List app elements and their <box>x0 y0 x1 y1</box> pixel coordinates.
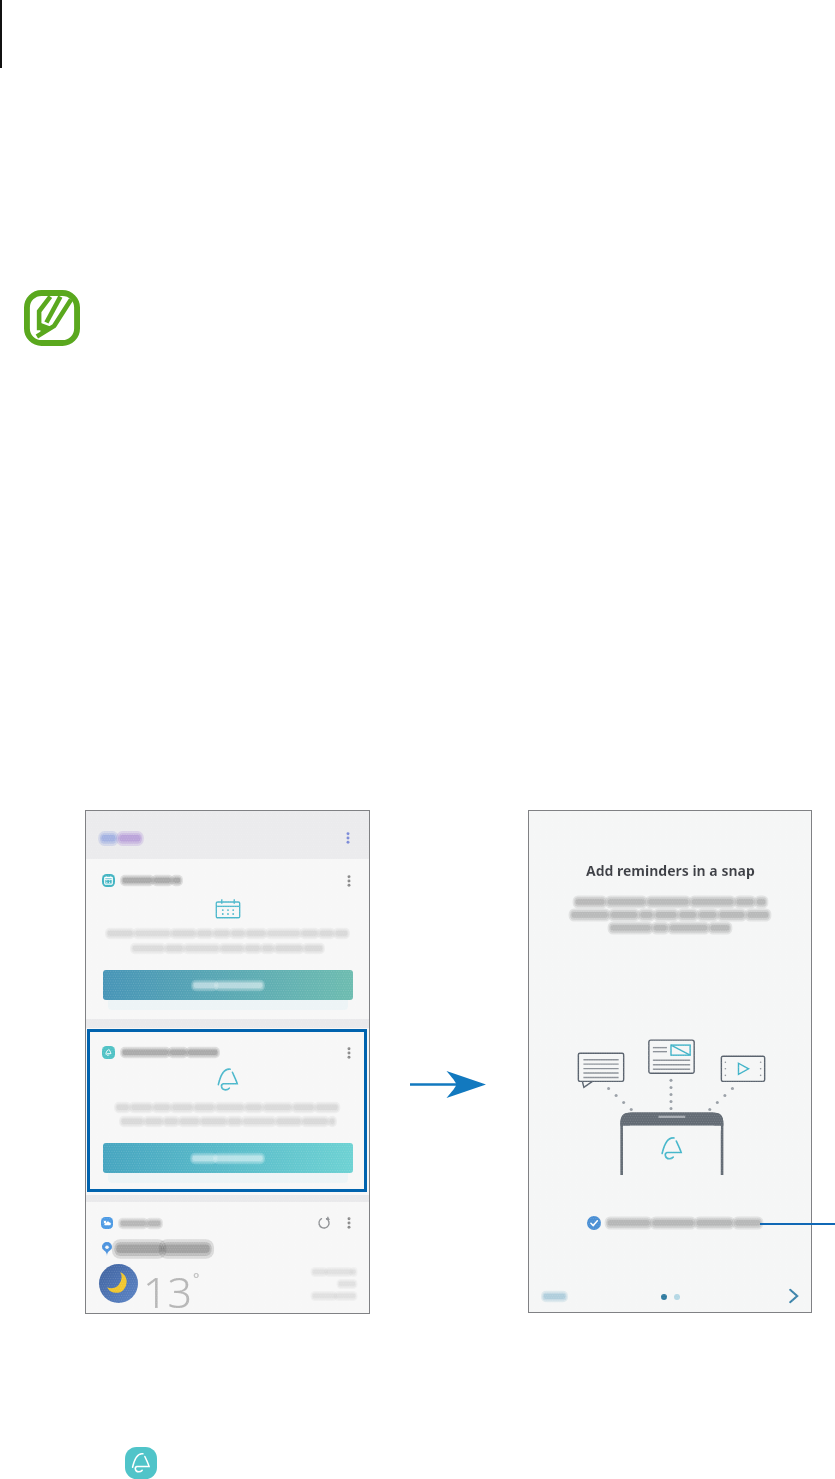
button[interactable]: More <box>343 874 355 888</box>
staticText: Add reminders in a snap <box>586 861 755 880</box>
button[interactable]: Refresh <box>317 1216 331 1230</box>
button[interactable]: Next <box>786 1285 802 1307</box>
staticText: 13 <box>143 1262 193 1321</box>
button[interactable]: More <box>343 1046 355 1060</box>
button[interactable]: More options <box>341 831 355 845</box>
button[interactable] <box>587 1216 760 1230</box>
button[interactable] <box>103 1143 353 1173</box>
button[interactable] <box>544 1293 565 1300</box>
button[interactable] <box>103 970 353 1000</box>
staticText: ° <box>193 1268 200 1288</box>
button[interactable]: More <box>343 1216 355 1230</box>
